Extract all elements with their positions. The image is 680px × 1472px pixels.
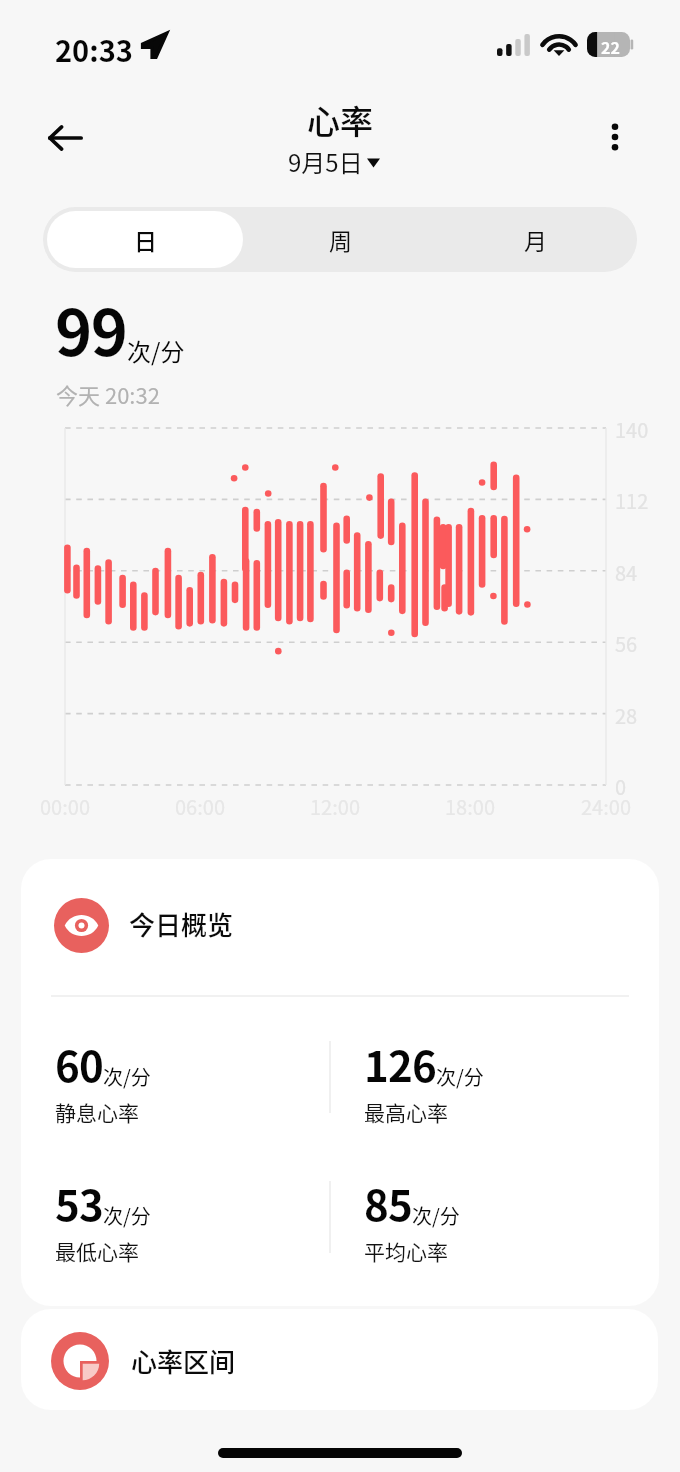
staticText: 今日概览 bbox=[129, 905, 234, 943]
staticText: 00:00 bbox=[25, 792, 105, 821]
staticText: 次/分 bbox=[436, 1062, 484, 1091]
staticText: 次/分 bbox=[412, 1201, 460, 1230]
staticText: 月 bbox=[524, 223, 547, 256]
staticText: 24:00 bbox=[566, 792, 646, 821]
button[interactable]: More options bbox=[586, 108, 644, 166]
staticText: 60 bbox=[55, 1033, 103, 1094]
staticText: 次/分 bbox=[103, 1201, 151, 1230]
button[interactable]: 9月5日 bbox=[288, 144, 380, 179]
staticText: 最低心率 bbox=[55, 1236, 139, 1266]
staticText: 心率 bbox=[307, 96, 373, 144]
staticText: 99 bbox=[55, 283, 127, 374]
button[interactable]: 日 bbox=[47, 211, 243, 268]
staticText: 12:00 bbox=[295, 792, 375, 821]
staticText: 56 bbox=[615, 629, 638, 658]
staticText: 最高心率 bbox=[364, 1097, 448, 1127]
staticText: 06:00 bbox=[160, 792, 240, 821]
staticText: 平均心率 bbox=[364, 1236, 448, 1266]
staticText: 0 bbox=[615, 772, 627, 801]
staticText: 22 bbox=[601, 35, 620, 58]
staticText: 20:33 bbox=[55, 28, 133, 70]
staticText: 85 bbox=[364, 1172, 412, 1233]
button[interactable]: 周 bbox=[243, 211, 438, 268]
staticText: 53 bbox=[55, 1172, 103, 1233]
staticText: 84 bbox=[615, 558, 638, 587]
staticText: 次/分 bbox=[127, 333, 185, 368]
staticText: 28 bbox=[615, 701, 638, 730]
staticText: 周 bbox=[329, 223, 352, 256]
staticText: 次/分 bbox=[103, 1062, 151, 1091]
button[interactable]: Back bbox=[36, 109, 94, 167]
staticText: 112 bbox=[615, 486, 649, 515]
staticText: 日 bbox=[134, 223, 157, 256]
staticText: 9月5日 bbox=[288, 144, 363, 179]
button[interactable]: 月 bbox=[438, 211, 633, 268]
staticText: 今天 20:32 bbox=[56, 378, 160, 410]
staticText: 126 bbox=[364, 1033, 436, 1094]
staticText: 18:00 bbox=[430, 792, 510, 821]
button[interactable]: 心率区间 bbox=[21, 1309, 658, 1410]
staticText: 心率区间 bbox=[131, 1342, 236, 1380]
staticText: 140 bbox=[615, 415, 649, 444]
staticText: 静息心率 bbox=[55, 1097, 139, 1127]
